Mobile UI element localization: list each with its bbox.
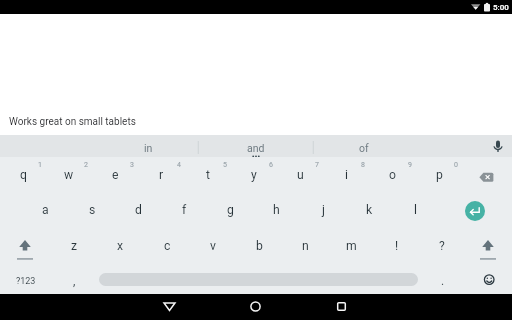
staticText: 2 xyxy=(84,161,88,169)
button[interactable]: a xyxy=(23,194,67,226)
button[interactable]: l xyxy=(393,194,437,226)
staticText: m xyxy=(346,239,357,253)
button[interactable]: x xyxy=(98,230,142,262)
staticText: q xyxy=(20,168,27,182)
staticText: p xyxy=(436,168,443,182)
button[interactable]: ? xyxy=(420,230,464,262)
staticText: d xyxy=(135,203,142,217)
button[interactable]: n xyxy=(283,230,327,262)
button[interactable]: ?123 xyxy=(4,268,48,294)
staticText: 6 xyxy=(269,161,273,169)
staticText: 1 xyxy=(38,161,42,169)
staticText: x xyxy=(117,239,124,253)
staticText: k xyxy=(366,203,373,217)
staticText: c xyxy=(164,239,171,253)
button[interactable] xyxy=(465,160,509,193)
button[interactable]: c xyxy=(145,230,189,262)
button[interactable]: h xyxy=(254,194,298,226)
button[interactable]: . xyxy=(423,266,463,296)
staticText: 8 xyxy=(361,161,365,169)
button[interactable]: b xyxy=(237,230,281,262)
button[interactable]: and xyxy=(206,138,306,158)
button[interactable]: k xyxy=(347,194,391,226)
staticText: 7 xyxy=(315,161,319,169)
staticText: a xyxy=(42,203,49,217)
staticText: g xyxy=(227,203,234,217)
button[interactable]: j xyxy=(301,194,345,226)
button[interactable] xyxy=(488,135,510,157)
staticText: u xyxy=(297,168,304,182)
button[interactable]: t xyxy=(186,159,230,191)
staticText: ! xyxy=(395,239,399,253)
staticText: ?123 xyxy=(16,276,36,287)
button[interactable]: p xyxy=(417,159,461,191)
staticText: 5 xyxy=(223,161,227,169)
staticText: y xyxy=(251,168,257,182)
staticText: s xyxy=(89,203,96,217)
button[interactable] xyxy=(3,233,47,266)
staticText: 0 xyxy=(454,161,458,169)
button[interactable]: q xyxy=(1,159,45,191)
staticText: Works great on small tablets xyxy=(9,116,136,128)
staticText: e xyxy=(112,168,119,182)
button[interactable]: y xyxy=(232,159,276,191)
button[interactable]: m xyxy=(329,230,373,262)
button[interactable]: f xyxy=(162,194,206,226)
button[interactable]: d xyxy=(116,194,160,226)
button[interactable]: z xyxy=(52,230,96,262)
staticText: . xyxy=(441,274,445,288)
staticText: i xyxy=(345,168,348,182)
staticText: f xyxy=(182,203,187,217)
button[interactable]: u xyxy=(278,159,322,191)
button[interactable]: o xyxy=(370,159,414,191)
staticText: h xyxy=(273,203,280,217)
button[interactable] xyxy=(478,268,500,290)
button[interactable] xyxy=(465,201,485,221)
button[interactable]: ! xyxy=(375,230,419,262)
staticText: 3 xyxy=(130,161,134,169)
staticText: t xyxy=(206,168,210,182)
staticText: n xyxy=(302,239,309,253)
button[interactable] xyxy=(329,294,354,319)
staticText: r xyxy=(159,168,164,182)
button[interactable] xyxy=(157,294,182,319)
staticText: o xyxy=(389,168,396,182)
button[interactable]: s xyxy=(70,194,114,226)
button[interactable]: v xyxy=(191,230,235,262)
button[interactable]: r xyxy=(139,159,183,191)
button[interactable]: g xyxy=(208,194,252,226)
staticText: in xyxy=(144,142,153,154)
staticText: of xyxy=(359,142,369,154)
staticText: v xyxy=(210,239,216,253)
staticText: l xyxy=(414,203,417,217)
staticText: 9 xyxy=(408,161,412,169)
button[interactable]: i xyxy=(324,159,368,191)
staticText: and xyxy=(247,142,265,154)
button[interactable]: of xyxy=(314,138,414,158)
button[interactable]: in xyxy=(98,138,198,158)
button[interactable]: e xyxy=(93,159,137,191)
button[interactable]: , xyxy=(54,266,94,296)
staticText: w xyxy=(64,168,74,182)
staticText: , xyxy=(73,274,76,288)
button[interactable] xyxy=(466,233,510,266)
staticText: 5:00 xyxy=(493,3,509,12)
button[interactable] xyxy=(243,294,268,319)
staticText: 4 xyxy=(177,161,181,169)
staticText: z xyxy=(71,239,78,253)
staticText: j xyxy=(322,203,325,217)
staticText: ? xyxy=(439,239,445,253)
staticText: b xyxy=(256,239,263,253)
button[interactable]: w xyxy=(47,159,91,191)
